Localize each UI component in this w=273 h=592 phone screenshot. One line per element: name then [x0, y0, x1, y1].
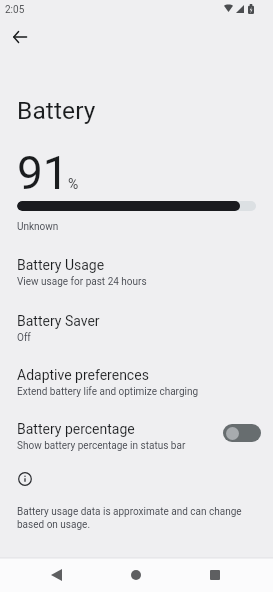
button[interactable]: Battery Saver	[0, 303, 273, 354]
staticText: %	[68, 176, 79, 192]
staticText: 2:05	[5, 4, 25, 16]
staticText: Battery usage data is approximate and ca…	[17, 506, 243, 530]
staticText: Battery Saver	[17, 313, 100, 329]
staticText: Battery	[17, 96, 96, 125]
staticText: Battery percentage	[17, 421, 135, 437]
staticText: Adaptive preferences	[17, 367, 149, 383]
staticText: Show battery percentage in status bar	[17, 440, 186, 452]
button[interactable]: Back	[36, 560, 76, 590]
button[interactable]: Home	[116, 560, 156, 590]
button[interactable]: Navigate up	[7, 24, 33, 50]
staticText: 91	[17, 146, 69, 200]
button[interactable]: Battery percentage	[223, 424, 261, 442]
button[interactable]: Battery Usage	[0, 247, 273, 298]
staticText: Battery Usage	[17, 257, 105, 273]
staticText: Off	[17, 332, 31, 344]
button[interactable]: Adaptive preferences	[0, 357, 273, 408]
staticText: Unknown	[17, 221, 59, 233]
staticText: Extend battery life and optimize chargin…	[17, 386, 199, 398]
button[interactable]: Battery percentage	[0, 411, 273, 462]
staticText: View usage for past 24 hours	[17, 276, 147, 288]
button[interactable]: Recent apps	[195, 560, 235, 590]
